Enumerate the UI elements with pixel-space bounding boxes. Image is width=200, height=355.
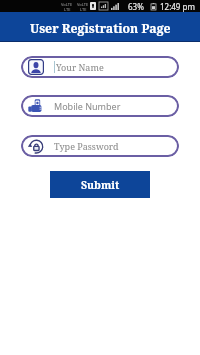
staticText: 63% bbox=[128, 1, 144, 12]
staticText: Your Name bbox=[56, 61, 104, 73]
staticText: Submit bbox=[81, 178, 120, 192]
staticText: LTE bbox=[80, 7, 87, 12]
staticText: Mobile Number bbox=[54, 100, 121, 112]
button[interactable]: Type Password bbox=[21, 135, 179, 157]
button[interactable]: Submit bbox=[50, 171, 150, 198]
staticText: 12:49 pm bbox=[160, 1, 195, 12]
staticText: User Registration Page bbox=[30, 20, 171, 37]
staticText: LTE bbox=[64, 7, 71, 12]
staticText: VoLTE bbox=[77, 2, 89, 7]
staticText: Type Password bbox=[54, 140, 119, 152]
button[interactable]: Mobile Number bbox=[21, 95, 179, 117]
button[interactable]: Your Name bbox=[21, 56, 179, 78]
staticText: VoLTE bbox=[61, 2, 73, 7]
